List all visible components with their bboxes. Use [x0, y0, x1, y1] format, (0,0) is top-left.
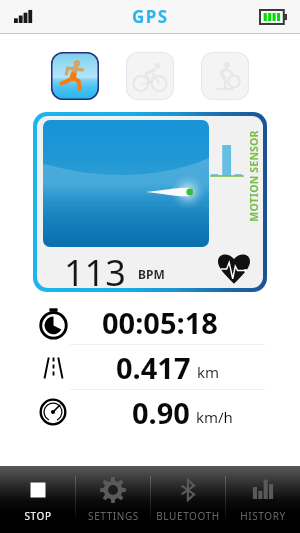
button[interactable]: HISTORY	[226, 466, 300, 533]
staticText: MOTION SENSOR	[247, 121, 261, 231]
button[interactable]: 0.90	[38, 390, 265, 434]
staticText: 0.417	[116, 348, 191, 387]
staticText: km	[197, 362, 220, 382]
staticText: 00:05:18	[102, 303, 218, 342]
button[interactable]: STOP	[0, 466, 75, 533]
button[interactable]: Running	[51, 52, 99, 100]
staticText: 0.90	[132, 393, 190, 432]
staticText: HISTORY	[240, 509, 286, 523]
staticText: 113	[64, 248, 126, 288]
button[interactable]: 00:05:18	[38, 300, 265, 344]
button[interactable]: Spinning	[201, 52, 249, 100]
staticText: BLUETOOTH	[156, 509, 220, 523]
button[interactable]: BLUETOOTH	[151, 466, 225, 533]
staticText: GPS	[132, 5, 169, 28]
button[interactable]: 0.417	[38, 345, 265, 389]
staticText: BPM	[138, 266, 165, 282]
staticText: km/h	[196, 407, 233, 427]
staticText: STOP	[24, 509, 52, 523]
button[interactable]: SETTINGS	[76, 466, 150, 533]
staticText: SETTINGS	[88, 509, 139, 523]
button[interactable]: Cycling	[126, 52, 174, 100]
